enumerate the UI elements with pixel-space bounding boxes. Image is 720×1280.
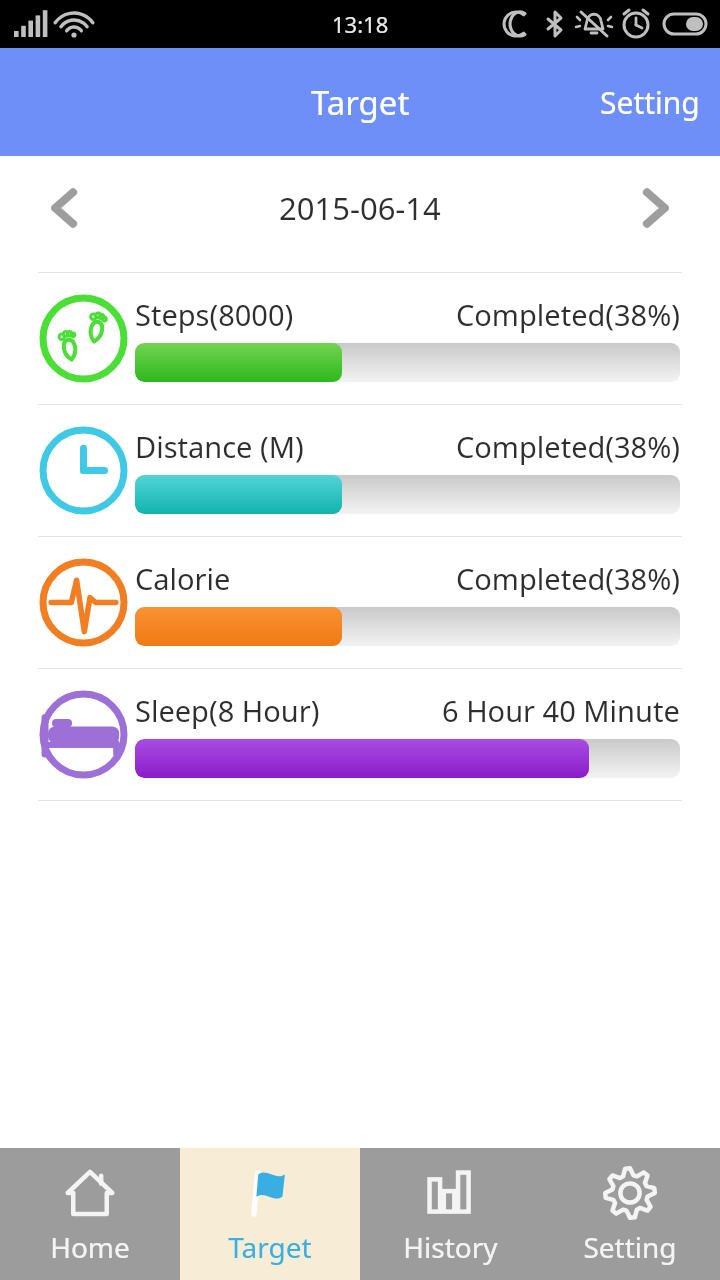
staticText: Home: [50, 1228, 130, 1266]
button[interactable]: Setting: [580, 68, 720, 137]
staticText: Completed(38%): [456, 427, 680, 466]
staticText: Sleep(8 Hour): [135, 691, 320, 730]
staticText: Target: [311, 80, 410, 125]
staticText: Distance (M): [135, 427, 304, 466]
staticText: History: [403, 1228, 498, 1266]
button[interactable]: Target: [180, 1148, 360, 1280]
button[interactable]: Distance (M): [0, 405, 720, 536]
staticText: Target: [228, 1228, 312, 1266]
staticText: 13:18: [332, 9, 389, 39]
button[interactable]: Next day: [626, 179, 684, 237]
staticText: 2015-06-14: [279, 187, 441, 229]
staticText: Completed(38%): [456, 559, 680, 598]
staticText: 6 Hour 40 Minute: [442, 691, 680, 730]
staticText: Steps(8000): [135, 295, 294, 334]
button[interactable]: Previous day: [36, 179, 94, 237]
button[interactable]: Setting: [540, 1148, 720, 1280]
button[interactable]: Home: [0, 1148, 180, 1280]
staticText: Setting: [583, 1228, 677, 1266]
button[interactable]: Calorie: [0, 537, 720, 668]
button[interactable]: Sleep(8 Hour): [0, 669, 720, 800]
staticText: Calorie: [135, 559, 231, 598]
button[interactable]: History: [360, 1148, 540, 1280]
button[interactable]: Steps(8000): [0, 273, 720, 404]
staticText: Setting: [600, 82, 700, 123]
staticText: Completed(38%): [456, 295, 680, 334]
